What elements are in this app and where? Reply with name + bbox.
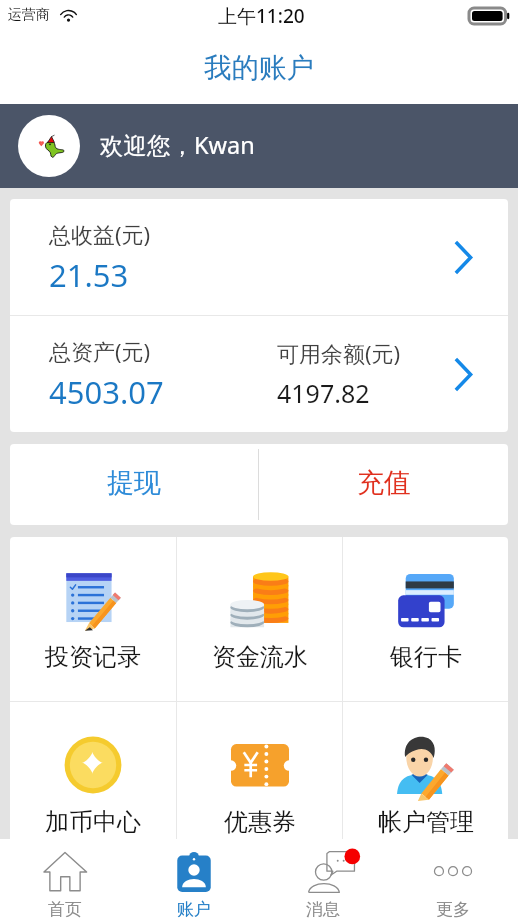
button[interactable]: 投资记录 [10,537,176,701]
staticText: 上午11:20 [218,3,305,29]
staticText: 总资产(元) [49,336,151,366]
staticText: 投资记录 [45,642,141,672]
staticText: 运营商 [8,6,50,24]
button[interactable]: 欢迎您，Kwan [0,104,518,188]
other: 查看详情 [455,242,472,273]
staticText: 4503.07 [49,371,164,413]
staticText: 可用余额(元) [277,338,401,368]
staticText: 消息 [306,899,340,920]
staticText: 资金流水 [212,642,308,672]
button[interactable]: 首页 [0,839,129,920]
staticText: 首页 [48,899,82,920]
button[interactable]: 充值 [259,444,508,525]
staticText: 21.53 [49,254,129,296]
staticText: 总收益(元) [49,219,151,249]
staticText: 更多 [436,899,470,920]
staticText: 优惠券 [224,807,296,837]
other: 查看详情 [455,359,472,390]
staticText: 账户 [177,899,211,920]
button[interactable]: 总收益(元) [10,199,508,315]
staticText: 欢迎您，Kwan [100,129,255,161]
button[interactable]: 更多 [388,839,518,920]
staticText: 提现 [107,466,161,500]
button[interactable]: 资金流水 [177,537,342,701]
staticText: 4197.82 [277,376,370,410]
button[interactable]: 账户 [129,839,258,920]
button[interactable]: 优惠券 [177,702,342,866]
staticText: 加币中心 [45,807,141,837]
staticText: 银行卡 [390,642,462,672]
button[interactable]: 帐户管理 [343,702,508,866]
button[interactable]: 银行卡 [343,537,508,701]
staticText: 帐户管理 [378,807,474,837]
button[interactable]: 提现 [10,444,258,525]
button[interactable]: 消息 [258,839,388,920]
staticText: 充值 [357,466,411,500]
button[interactable]: 加币中心 [10,702,176,866]
button[interactable]: 总资产(元) [10,316,508,432]
staticText: 我的账户 [204,51,314,86]
